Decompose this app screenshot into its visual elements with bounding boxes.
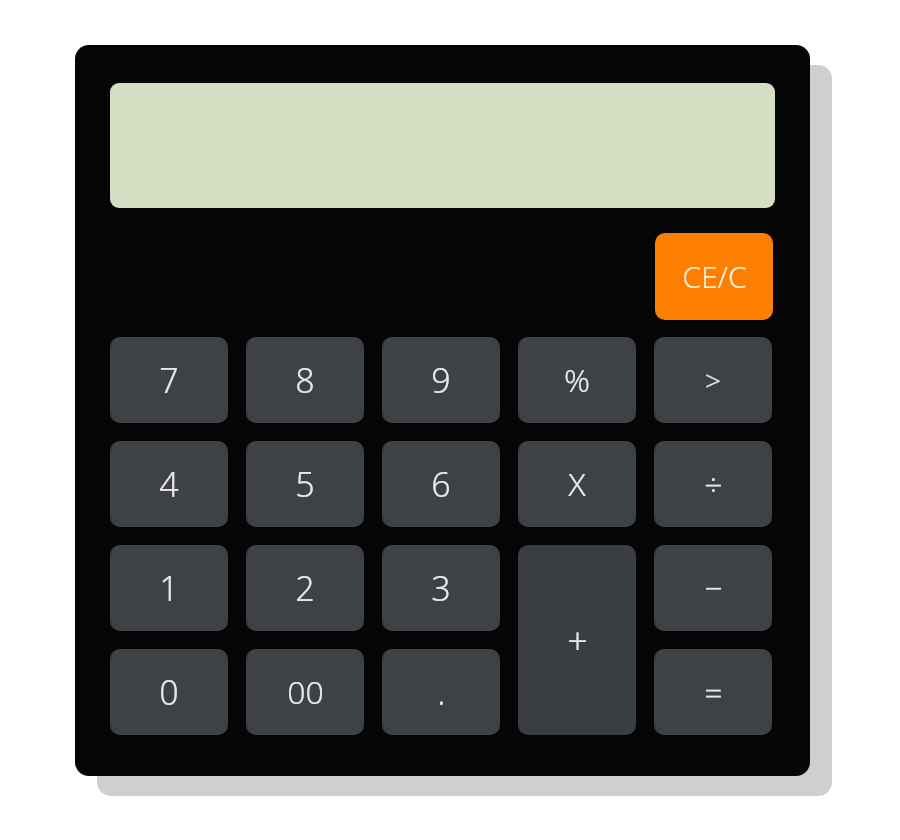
staticText: 5 (295, 461, 315, 507)
staticText: X (568, 462, 586, 506)
staticText: 1 (159, 565, 179, 611)
staticText: 9 (431, 357, 451, 403)
staticText: − (704, 566, 723, 610)
button[interactable]: Multiply (518, 441, 636, 527)
staticText: + (567, 616, 588, 665)
button[interactable]: Plus (518, 545, 636, 735)
staticText: = (704, 670, 723, 714)
button[interactable]: 5 (246, 441, 364, 527)
staticText: 2 (295, 565, 315, 611)
staticText: 0 (159, 669, 179, 715)
button[interactable]: CE/C (655, 233, 773, 320)
button[interactable]: Percent (518, 337, 636, 423)
staticText: ÷ (704, 462, 723, 506)
staticText: CE/C (682, 256, 747, 297)
button[interactable]: Equals (654, 649, 772, 735)
button[interactable]: 1 (110, 545, 228, 631)
staticText: 3 (431, 565, 451, 611)
staticText: 6 (431, 461, 451, 507)
button[interactable]: 4 (110, 441, 228, 527)
staticText: % (564, 358, 590, 402)
staticText: . (437, 669, 446, 715)
staticText: 8 (295, 357, 315, 403)
staticText: 4 (159, 461, 179, 507)
button[interactable]: 6 (382, 441, 500, 527)
button[interactable]: 8 (246, 337, 364, 423)
staticText: 7 (159, 357, 179, 403)
staticText: 00 (287, 670, 324, 714)
staticText: > (705, 361, 721, 399)
button[interactable]: 00 (246, 649, 364, 735)
button[interactable]: Decimal point (382, 649, 500, 735)
button[interactable]: Calculator display (110, 83, 775, 208)
button[interactable]: 2 (246, 545, 364, 631)
button[interactable]: 9 (382, 337, 500, 423)
button[interactable]: 3 (382, 545, 500, 631)
button[interactable]: 0 (110, 649, 228, 735)
button[interactable]: Backspace (654, 337, 772, 423)
button[interactable]: Minus (654, 545, 772, 631)
button[interactable]: Divide (654, 441, 772, 527)
button[interactable]: 7 (110, 337, 228, 423)
